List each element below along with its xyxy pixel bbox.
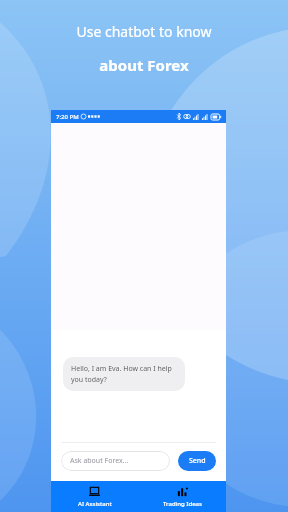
button[interactable]: Trading Ideas bbox=[138, 481, 226, 512]
staticText: 7:20 PM bbox=[56, 113, 79, 121]
button[interactable]: Hello, I am Eva. How can I help you toda… bbox=[63, 357, 185, 391]
staticText: Trading Ideas bbox=[163, 500, 202, 508]
other: AI Assistant bbox=[89, 486, 100, 497]
staticText: AI Assistant bbox=[78, 500, 112, 508]
staticText: Hello, I am Eva. How can I help you toda… bbox=[71, 364, 177, 384]
button[interactable]: Ask about Forex... bbox=[61, 451, 170, 471]
button[interactable]: Send bbox=[178, 451, 216, 471]
staticText: about Forex bbox=[99, 55, 189, 75]
staticText: Use chatbot to know bbox=[76, 22, 212, 41]
other: Trading Ideas bbox=[177, 486, 188, 497]
staticText: Ask about Forex... bbox=[70, 456, 129, 466]
staticText: Send bbox=[189, 456, 206, 466]
button[interactable]: AI Assistant bbox=[51, 481, 138, 512]
